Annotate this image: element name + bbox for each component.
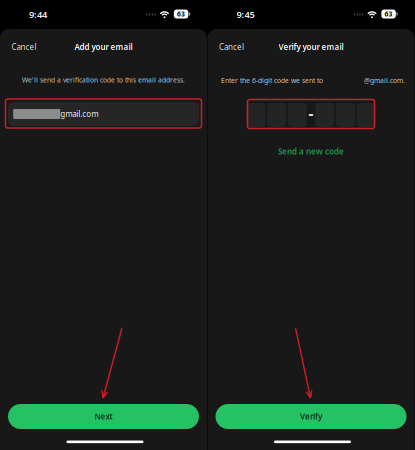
button[interactable]: Cancel bbox=[7, 38, 41, 56]
staticText: Verify your email bbox=[278, 42, 343, 52]
staticText: Add your email bbox=[74, 42, 132, 52]
staticText: gmail.com bbox=[60, 109, 98, 119]
button[interactable]: Next bbox=[8, 404, 199, 429]
staticText: Next bbox=[94, 411, 112, 422]
staticText: 63 bbox=[385, 10, 393, 18]
staticText: Send a new code bbox=[278, 146, 344, 157]
staticText: Verify bbox=[300, 411, 322, 422]
staticText: Cancel bbox=[11, 42, 36, 52]
button[interactable]: Cancel bbox=[214, 38, 248, 56]
staticText: 63 bbox=[177, 10, 185, 18]
staticText: We'll send a verification code to this e… bbox=[22, 76, 185, 84]
staticText: @gmail.com. bbox=[364, 76, 405, 85]
staticText: 9:45 bbox=[236, 8, 254, 21]
staticText: Cancel bbox=[219, 42, 244, 52]
staticText: 9:44 bbox=[29, 8, 47, 21]
button[interactable]: Verify bbox=[215, 404, 406, 429]
button[interactable]: Send a new code bbox=[278, 144, 344, 158]
staticText: Enter the 6-digit code we sent to bbox=[221, 76, 323, 85]
